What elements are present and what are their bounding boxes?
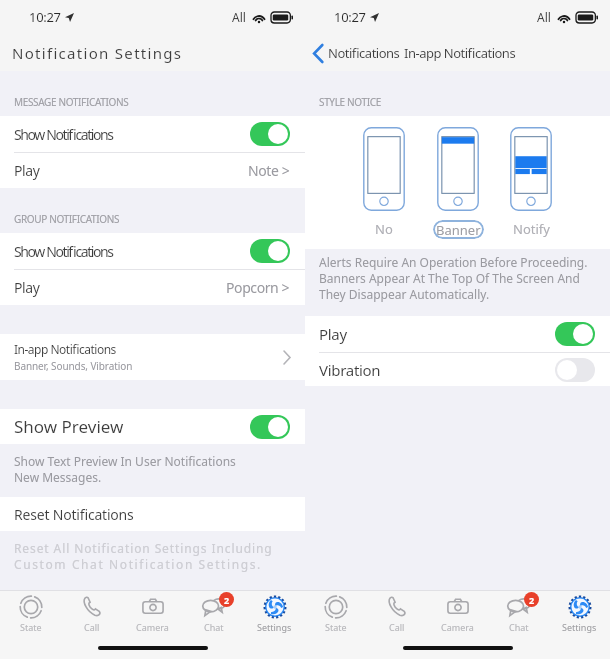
staticText: 2 — [224, 594, 230, 606]
staticText: In-app Notifications — [14, 341, 116, 357]
button[interactable]: Play — [0, 270, 305, 305]
button[interactable]: Toggle — [555, 322, 595, 346]
button[interactable]: Call — [61, 591, 122, 636]
staticText: Play — [14, 278, 40, 297]
staticText: Notifications — [328, 44, 400, 62]
button[interactable]: Show Notifications — [0, 233, 305, 269]
button[interactable]: Camera — [122, 591, 183, 636]
staticText: GROUP NOTIFICATIONS — [14, 212, 120, 226]
button[interactable]: Toggle — [250, 415, 290, 439]
staticText: Play — [14, 161, 40, 180]
staticText: Call — [84, 621, 100, 633]
staticText: Chat — [509, 621, 529, 633]
button[interactable]: In-app Notifications — [0, 334, 305, 380]
staticText: Show Preview — [14, 415, 124, 438]
staticText: Banner — [436, 221, 481, 239]
button[interactable]: Camera — [427, 591, 488, 636]
button[interactable]: Toggle — [555, 358, 595, 382]
staticText: Vibration — [319, 360, 381, 380]
button[interactable]: Reset Notifications — [0, 497, 305, 531]
staticText: STYLE NOTICE — [319, 95, 381, 109]
staticText: Banner, Sounds, Vibration — [14, 359, 133, 373]
staticText: Show Notifications — [14, 242, 113, 261]
button[interactable]: Toggle — [250, 122, 290, 146]
button[interactable]: No — [355, 127, 413, 238]
staticText: Alerts Require An Operation Before Proce… — [319, 254, 588, 270]
button[interactable]: State — [305, 591, 366, 636]
staticText: Settings — [562, 621, 597, 633]
staticText: Camera — [136, 621, 169, 633]
staticText: Popcorn > — [226, 278, 290, 297]
button[interactable]: Play — [305, 316, 610, 352]
button[interactable]: Play — [0, 153, 305, 188]
staticText: Chat — [204, 621, 224, 633]
staticText: Notify — [513, 220, 550, 238]
staticText: Settings — [257, 621, 292, 633]
staticText: Play — [319, 324, 347, 344]
button[interactable]: Notify — [502, 127, 560, 238]
staticText: 2 — [529, 594, 535, 606]
button[interactable]: Settings — [244, 591, 305, 636]
staticText: In-app Notifications — [404, 44, 516, 62]
staticText: 10:27 — [334, 8, 366, 26]
staticText: Camera — [441, 621, 474, 633]
staticText: MESSAGE NOTIFICATIONS — [14, 95, 129, 109]
staticText: New Messages. — [14, 469, 102, 485]
staticText: State — [325, 621, 347, 633]
staticText: Banners Appear At The Top Of The Screen … — [319, 270, 580, 286]
staticText: They Disappear Automatically. — [319, 286, 490, 302]
button[interactable]: Toggle — [250, 239, 290, 263]
button[interactable]: Back — [313, 44, 516, 62]
button[interactable]: Vibration — [305, 353, 610, 386]
staticText: All — [537, 9, 551, 25]
staticText: Call — [389, 621, 405, 633]
staticText: Show Text Preview In User Notifications — [14, 453, 236, 469]
button[interactable]: Call — [366, 591, 427, 636]
button[interactable]: 2 — [183, 591, 244, 636]
staticText: Reset Notifications — [14, 505, 134, 524]
staticText: No — [375, 220, 393, 238]
button[interactable]: Show Notifications — [0, 116, 305, 152]
staticText: State — [20, 621, 42, 633]
button[interactable]: 2 — [488, 591, 549, 636]
staticText: Reset All Notification Settings Includin… — [14, 540, 273, 556]
staticText: 10:27 — [29, 8, 61, 26]
staticText: All — [232, 9, 246, 25]
staticText: Note > — [248, 161, 290, 180]
button[interactable]: Show Preview — [0, 409, 305, 444]
button[interactable]: State — [0, 591, 61, 636]
button[interactable]: Banner — [429, 127, 487, 239]
staticText: Custom Chat Notification Settings. — [14, 556, 262, 572]
staticText: Show Notifications — [14, 125, 113, 144]
staticText: Notification Settings — [12, 43, 183, 63]
button[interactable]: Settings — [549, 591, 610, 636]
